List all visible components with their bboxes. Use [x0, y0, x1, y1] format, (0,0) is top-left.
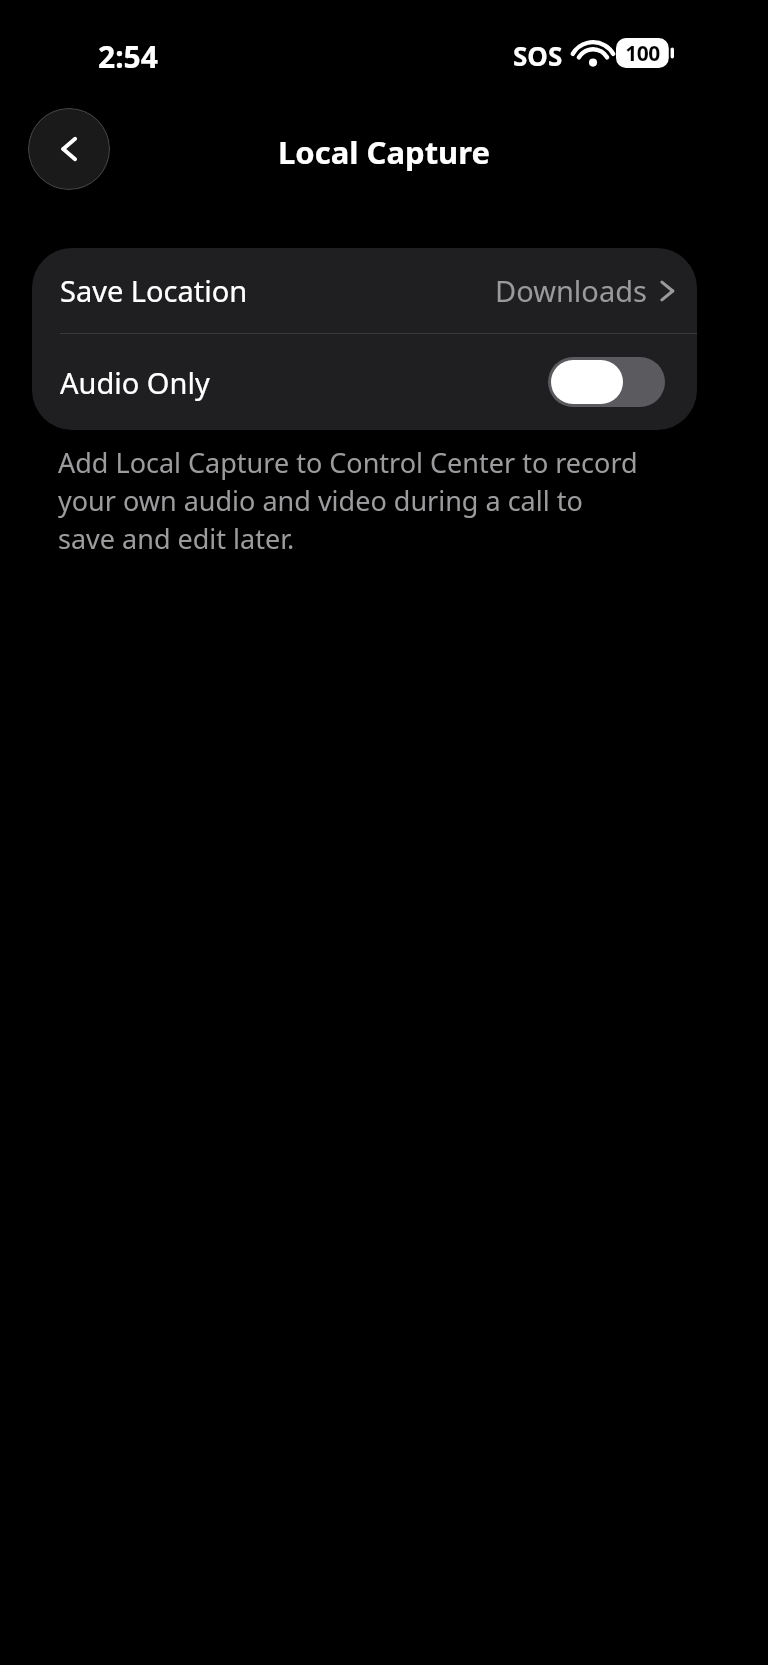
staticText: Audio Only: [60, 363, 210, 402]
staticText: Local Capture: [278, 131, 490, 173]
button[interactable]: Audio Only: [32, 334, 697, 430]
button[interactable]: Back: [28, 108, 110, 190]
staticText: Add Local Capture to Control Center to r…: [58, 444, 643, 557]
staticText: 2:54: [98, 36, 158, 77]
staticText: 100: [625, 39, 660, 68]
staticText: Downloads: [495, 271, 647, 310]
button[interactable]: Save Location: [32, 248, 697, 333]
button[interactable]: Audio Only toggle: [548, 357, 665, 407]
staticText: SOS: [513, 38, 563, 73]
staticText: Save Location: [60, 271, 248, 310]
